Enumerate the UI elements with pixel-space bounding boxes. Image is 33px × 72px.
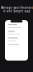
staticText: in one simple app xyxy=(2,9,30,13)
staticText: Manage your finances xyxy=(0,6,32,9)
